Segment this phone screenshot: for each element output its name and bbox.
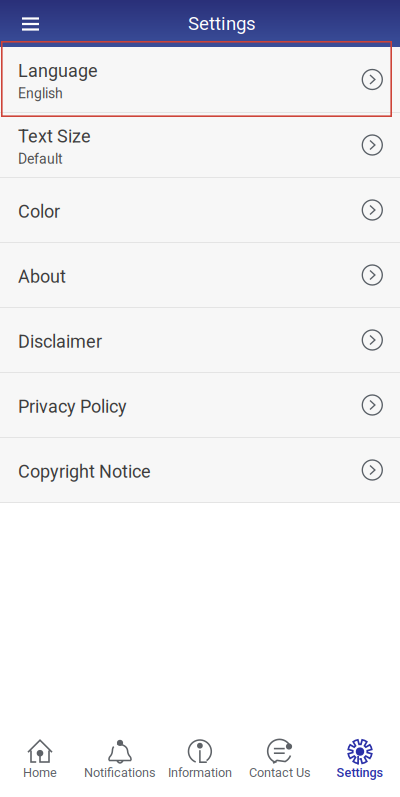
button[interactable]: Text Size: [0, 112, 400, 177]
staticText: Settings: [336, 765, 383, 780]
button[interactable]: Privacy Policy: [0, 372, 400, 437]
button[interactable]: Contact Us: [240, 735, 320, 793]
staticText: Disclaimer: [18, 331, 102, 352]
staticText: Privacy Policy: [18, 396, 127, 417]
button[interactable]: Language: [0, 47, 400, 112]
button[interactable]: Home: [0, 735, 80, 793]
staticText: About: [18, 266, 66, 287]
staticText: Notifications: [84, 765, 156, 780]
button[interactable]: Information: [160, 735, 240, 793]
staticText: Default: [18, 151, 63, 167]
staticText: Language: [18, 60, 98, 81]
staticText: Settings: [188, 13, 256, 34]
staticText: English: [18, 85, 63, 102]
button[interactable]: Color: [0, 177, 400, 242]
staticText: Home: [23, 765, 57, 780]
button[interactable]: Notifications: [80, 735, 160, 793]
staticText: Text Size: [18, 126, 91, 147]
button[interactable]: Disclaimer: [0, 307, 400, 372]
staticText: Copyright Notice: [18, 461, 151, 482]
button[interactable]: About: [0, 242, 400, 307]
button[interactable]: Settings: [320, 735, 400, 793]
button[interactable]: Copyright Notice: [0, 437, 400, 502]
staticText: Contact Us: [249, 765, 311, 780]
button[interactable]: Menu: [0, 0, 48, 48]
staticText: Color: [18, 201, 60, 222]
staticText: Information: [168, 765, 232, 780]
